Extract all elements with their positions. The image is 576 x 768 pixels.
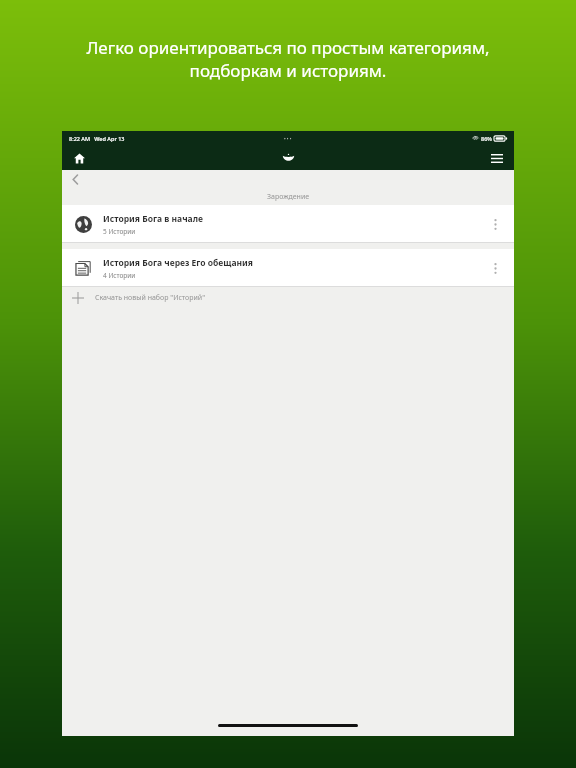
- button[interactable]: Home: [70, 149, 88, 167]
- button[interactable]: Menu: [488, 149, 506, 167]
- button[interactable]: Back: [67, 171, 84, 188]
- button[interactable]: App logo: [278, 148, 298, 168]
- staticText: История Бога через Его обещания: [103, 257, 253, 269]
- staticText: • • •: [284, 136, 292, 142]
- staticText: Скачать новый набор "Историй": [95, 293, 206, 303]
- staticText: Легко ориентироваться по простым категор…: [86, 36, 490, 82]
- staticText: Зарождение: [267, 192, 310, 202]
- staticText: 86%: [481, 135, 492, 142]
- button[interactable]: История Бога через Его обещания: [62, 249, 514, 287]
- staticText: 4 Истории: [103, 271, 136, 280]
- staticText: 8:22 AM Wed Apr 13: [69, 135, 125, 142]
- staticText: 5 Истории: [103, 227, 136, 236]
- button[interactable]: More options: [486, 259, 504, 277]
- button[interactable]: История Бога в начале: [62, 205, 514, 243]
- button[interactable]: More options: [486, 215, 504, 233]
- staticText: История Бога в начале: [103, 213, 203, 225]
- button[interactable]: Скачать новый набор "Историй": [62, 287, 514, 309]
